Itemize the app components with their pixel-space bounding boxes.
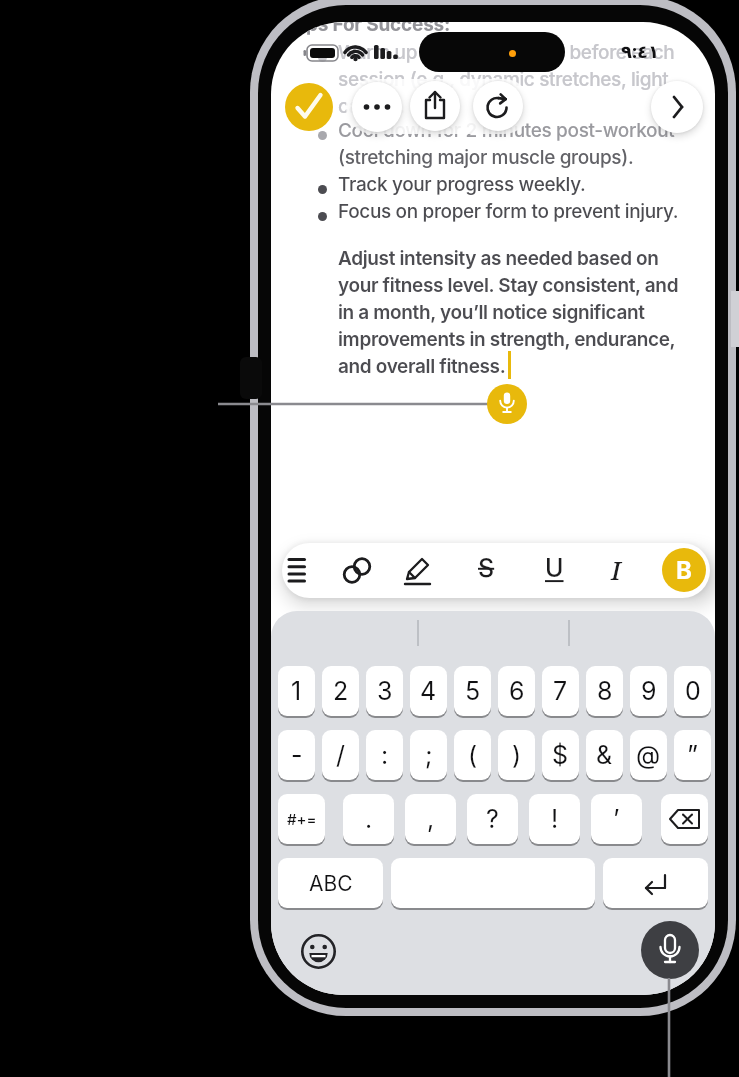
button[interactable]: 3	[366, 666, 403, 716]
button[interactable]: 6	[498, 666, 535, 716]
button[interactable]	[410, 81, 460, 131]
button[interactable]	[641, 921, 699, 979]
button[interactable]: $	[542, 730, 579, 780]
button[interactable]	[285, 83, 333, 131]
button[interactable]: .	[343, 794, 394, 844]
button[interactable]: (	[454, 730, 491, 780]
staticText: (	[468, 740, 478, 770]
staticText: .	[365, 804, 373, 834]
button[interactable]: 7	[542, 666, 579, 716]
staticText: 4	[420, 676, 437, 706]
staticText: 9	[641, 676, 657, 706]
button[interactable]: ?	[467, 794, 518, 844]
staticText: :	[381, 740, 389, 770]
button[interactable]	[352, 82, 402, 132]
staticText: U	[545, 553, 564, 583]
staticText: 1	[291, 676, 302, 706]
button[interactable]: /	[322, 730, 359, 780]
button[interactable]: @	[630, 730, 667, 780]
staticText: I	[611, 552, 621, 587]
button[interactable]: #+=	[278, 794, 325, 844]
staticText: session (e.g., dynamic stretches, light	[338, 68, 669, 91]
staticText: 2	[333, 676, 349, 706]
staticText: )	[512, 740, 522, 770]
button[interactable]: 8	[586, 666, 623, 716]
button[interactable]	[391, 858, 595, 908]
button[interactable]: )	[498, 730, 535, 780]
staticText: ;	[425, 740, 433, 770]
staticText: Adjust intensity as needed based on	[338, 247, 659, 270]
staticText: -	[291, 740, 303, 770]
staticText: ’	[613, 804, 620, 834]
staticText: 8	[597, 676, 613, 706]
button[interactable]: &	[586, 730, 623, 780]
button[interactable]	[661, 794, 708, 844]
button[interactable]: 2	[322, 666, 359, 716]
staticText: ٩:٤١	[621, 39, 660, 64]
staticText: 3	[377, 676, 393, 706]
staticText: 7	[553, 676, 568, 706]
button[interactable]	[473, 81, 523, 131]
button[interactable]: 9	[630, 666, 667, 716]
staticText: $	[552, 740, 569, 770]
staticText: Cool down for 2 minutes post-workout	[338, 119, 675, 142]
button[interactable]	[603, 858, 708, 908]
button[interactable]	[487, 384, 527, 424]
staticText: @	[636, 740, 661, 770]
button[interactable]: ”	[674, 730, 711, 780]
button[interactable]	[300, 933, 337, 970]
staticText: Track your progress weekly.	[338, 173, 586, 196]
button[interactable]: ’	[591, 794, 642, 844]
staticText: S	[478, 553, 495, 583]
staticText: !	[551, 804, 559, 834]
staticText: &	[596, 740, 613, 770]
staticText: 6	[509, 676, 525, 706]
button[interactable]: 1	[278, 666, 315, 716]
staticText: 5	[465, 676, 481, 706]
staticText: ?	[486, 804, 499, 834]
staticText: Warm up for 5-10 minutes before each	[338, 41, 675, 64]
button[interactable]: ,	[405, 794, 456, 844]
staticText: (stretching major muscle groups).	[338, 146, 634, 169]
staticText: ABC	[309, 871, 353, 896]
button[interactable]	[651, 81, 703, 133]
staticText: Focus on proper form to prevent injury.	[338, 200, 679, 223]
staticText: #+=	[287, 810, 317, 828]
button[interactable]: ABC	[278, 858, 383, 908]
staticText: /	[336, 740, 346, 770]
staticText: B	[676, 556, 692, 585]
button[interactable]: ;	[410, 730, 447, 780]
button[interactable]: 5	[454, 666, 491, 716]
button[interactable]: 4	[410, 666, 447, 716]
staticText: in a month, you’ll notice significant	[338, 301, 645, 324]
button[interactable]: B	[662, 548, 706, 592]
staticText: ,	[427, 804, 435, 834]
staticText: and overall fitness.	[338, 355, 506, 378]
button[interactable]: !	[529, 794, 580, 844]
staticText: 0	[685, 676, 701, 706]
staticText: ps For Success:	[306, 22, 451, 36]
button[interactable]: :	[366, 730, 403, 780]
button[interactable]: 0	[674, 666, 711, 716]
staticText: your fitness level. Stay consistent, and	[338, 274, 679, 297]
staticText: ”	[687, 740, 699, 770]
button[interactable]: -	[278, 730, 315, 780]
staticText: cardio).	[338, 95, 405, 118]
staticText: improvements in strength, endurance,	[338, 328, 676, 351]
